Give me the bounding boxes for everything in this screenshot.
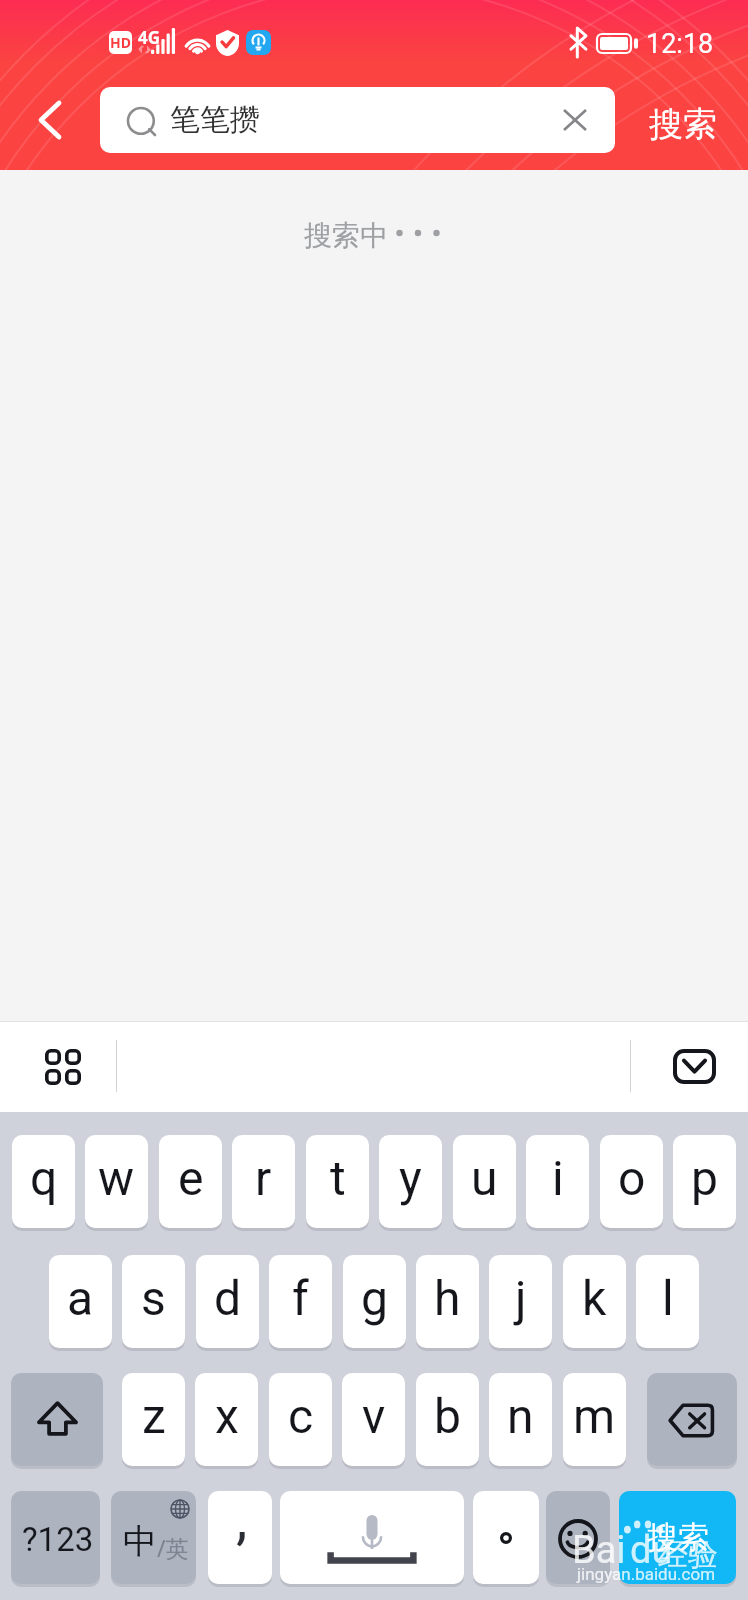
- button[interactable]: h: [416, 1255, 479, 1348]
- button[interactable]: Back: [10, 90, 70, 150]
- staticText: e: [178, 1150, 204, 1206]
- staticText: x: [215, 1388, 239, 1444]
- button[interactable]: s: [122, 1255, 185, 1348]
- staticText: Bai: [572, 1528, 626, 1573]
- staticText: w: [98, 1150, 135, 1206]
- button[interactable]: Shift: [11, 1373, 103, 1466]
- staticText: 搜索: [649, 103, 717, 146]
- staticText: 12:18: [646, 28, 714, 60]
- button[interactable]: 搜索: [625, 91, 740, 157]
- staticText: p: [691, 1150, 718, 1206]
- button[interactable]: e: [159, 1135, 222, 1228]
- staticText: a: [67, 1270, 94, 1326]
- staticText: 搜索: [647, 1518, 709, 1557]
- button[interactable]: [473, 1491, 539, 1584]
- button[interactable]: Keyboard layouts: [35, 1039, 91, 1095]
- button[interactable]: Space: [280, 1491, 464, 1584]
- staticText: g: [361, 1270, 388, 1326]
- button[interactable]: f: [269, 1255, 332, 1348]
- button[interactable]: b: [416, 1373, 479, 1466]
- staticText: i: [552, 1150, 564, 1206]
- staticText: c: [288, 1388, 314, 1444]
- staticText: h: [434, 1270, 461, 1326]
- button[interactable]: Switch language: [111, 1491, 196, 1584]
- button[interactable]: t: [306, 1135, 369, 1228]
- button[interactable]: p: [673, 1135, 736, 1228]
- button[interactable]: ?123: [11, 1491, 100, 1584]
- staticText: 笔笔攒: [170, 101, 260, 139]
- staticText: du: [630, 1528, 673, 1573]
- staticText: z: [142, 1388, 166, 1444]
- staticText: 4G: [138, 26, 161, 49]
- staticText: v: [362, 1388, 386, 1444]
- staticText: f: [292, 1270, 309, 1326]
- staticText: d: [214, 1270, 242, 1326]
- button[interactable]: u: [453, 1135, 516, 1228]
- staticText: jingyan.baidu.com: [577, 1564, 716, 1584]
- button[interactable]: l: [636, 1255, 699, 1348]
- button[interactable]: Backspace: [647, 1373, 737, 1466]
- staticText: j: [515, 1270, 527, 1326]
- button[interactable]: ,: [208, 1491, 272, 1584]
- staticText: ?123: [22, 1520, 94, 1559]
- button[interactable]: Hide keyboard: [673, 1049, 716, 1084]
- button[interactable]: q: [12, 1135, 75, 1228]
- staticText: k: [582, 1270, 607, 1326]
- button[interactable]: w: [85, 1135, 148, 1228]
- staticText: ,: [236, 1491, 248, 1552]
- staticText: o: [618, 1150, 646, 1206]
- staticText: b: [434, 1388, 461, 1444]
- button[interactable]: 搜索: [619, 1491, 736, 1584]
- button[interactable]: g: [343, 1255, 406, 1348]
- staticText: q: [30, 1150, 58, 1206]
- button[interactable]: v: [342, 1373, 405, 1466]
- button[interactable]: n: [489, 1373, 552, 1466]
- button[interactable]: z: [122, 1373, 185, 1466]
- staticText: u: [471, 1150, 498, 1206]
- staticText: m: [573, 1388, 616, 1444]
- staticText: 经验: [658, 1536, 718, 1574]
- staticText: r: [255, 1150, 272, 1206]
- staticText: HD: [110, 33, 131, 52]
- staticText: n: [507, 1388, 534, 1444]
- button[interactable]: d: [196, 1255, 259, 1348]
- staticText: /英: [157, 1532, 189, 1563]
- button[interactable]: o: [600, 1135, 663, 1228]
- staticText: 搜索中: [304, 218, 388, 253]
- staticText: t: [330, 1150, 346, 1206]
- staticText: s: [141, 1270, 166, 1326]
- staticText: l: [662, 1270, 674, 1326]
- staticText: y: [399, 1150, 422, 1206]
- button[interactable]: Emoji: [546, 1491, 610, 1584]
- button[interactable]: c: [269, 1373, 332, 1466]
- staticText: 中: [123, 1520, 157, 1563]
- button[interactable]: r: [232, 1135, 295, 1228]
- button[interactable]: x: [195, 1373, 258, 1466]
- button[interactable]: Clear text: [542, 87, 608, 153]
- button[interactable]: 笔笔攒: [100, 87, 615, 153]
- button[interactable]: y: [379, 1135, 442, 1228]
- button[interactable]: k: [563, 1255, 626, 1348]
- button[interactable]: a: [49, 1255, 112, 1348]
- button[interactable]: m: [563, 1373, 626, 1466]
- button[interactable]: i: [526, 1135, 589, 1228]
- button[interactable]: j: [489, 1255, 552, 1348]
